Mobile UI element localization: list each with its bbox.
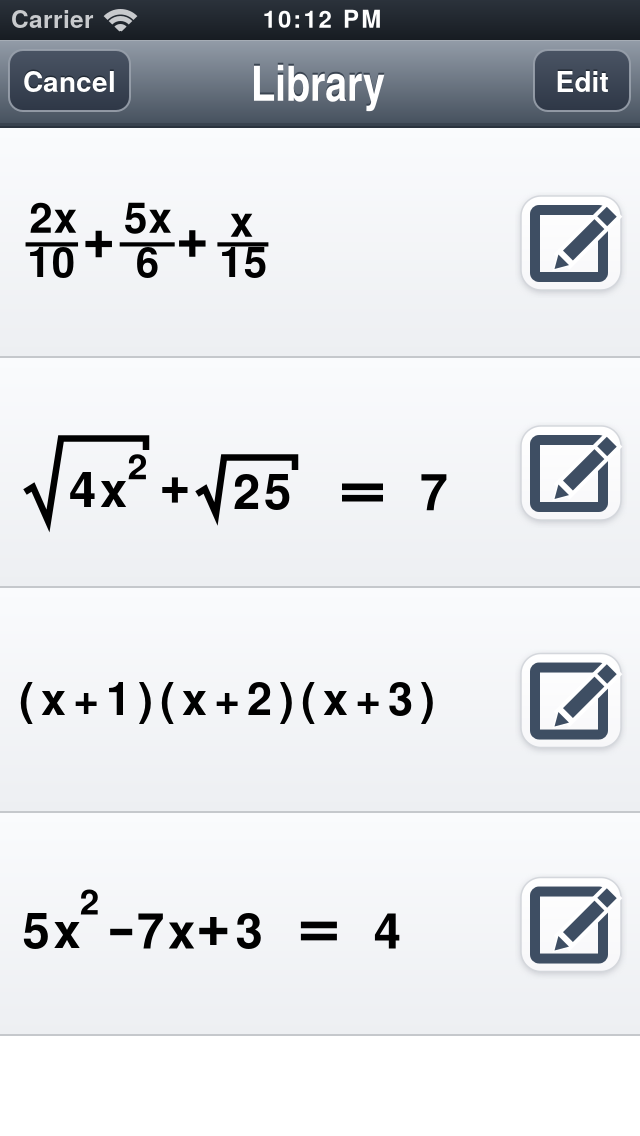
staticText: 7 [137,893,164,964]
staticText: ) [420,664,435,729]
staticText: 3 [235,893,262,963]
staticText: 5 [244,230,267,290]
staticText: 1 [263,1,276,35]
staticText: ( [301,664,316,729]
staticText: M [361,1,381,35]
staticText: Cancel [23,60,116,101]
staticText: Library [251,45,385,114]
staticText: 5 [124,185,147,245]
staticText: ( [19,664,34,729]
staticText: 3 [388,664,413,729]
staticText: 0 [278,1,291,35]
staticText: 1 [219,230,242,290]
staticText: 1 [106,664,131,729]
staticText: P [343,1,359,35]
staticText: 0 [52,230,75,290]
staticText: + [355,664,381,729]
staticText: Edit [555,59,608,99]
staticText: 2 [80,875,99,925]
staticText: ( [160,664,175,729]
staticText: 2 [247,664,272,729]
staticText: x [41,664,66,729]
staticText: 4 [374,893,401,964]
staticText: Edit [555,60,608,101]
staticText: + [214,664,240,729]
staticText: ) [279,664,294,729]
staticText: ) [138,664,153,729]
staticText: 1 [27,230,50,290]
staticText: 2 [319,1,332,35]
staticText: 6 [136,230,159,290]
staticText: x [54,185,77,245]
staticText: 4 [69,452,96,522]
staticText: x [100,452,127,522]
staticText: Cancel [23,59,116,99]
staticText: Carrier [11,0,94,36]
staticText: 2 [233,454,260,524]
staticText: x [149,185,172,245]
staticText: x [54,893,81,963]
staticText: 2 [29,185,52,245]
staticText: Library [251,47,385,116]
staticText: x [182,664,207,729]
staticText: x [230,189,253,249]
staticText: x [168,893,195,964]
staticText [334,1,341,35]
staticText: 2 [127,439,147,490]
staticText: 7 [420,454,448,526]
staticText: 5 [264,454,291,524]
staticText: 1 [303,1,316,35]
staticText: : [293,1,301,35]
staticText: x [323,664,348,729]
staticText: + [73,664,99,729]
staticText: 5 [23,893,50,963]
